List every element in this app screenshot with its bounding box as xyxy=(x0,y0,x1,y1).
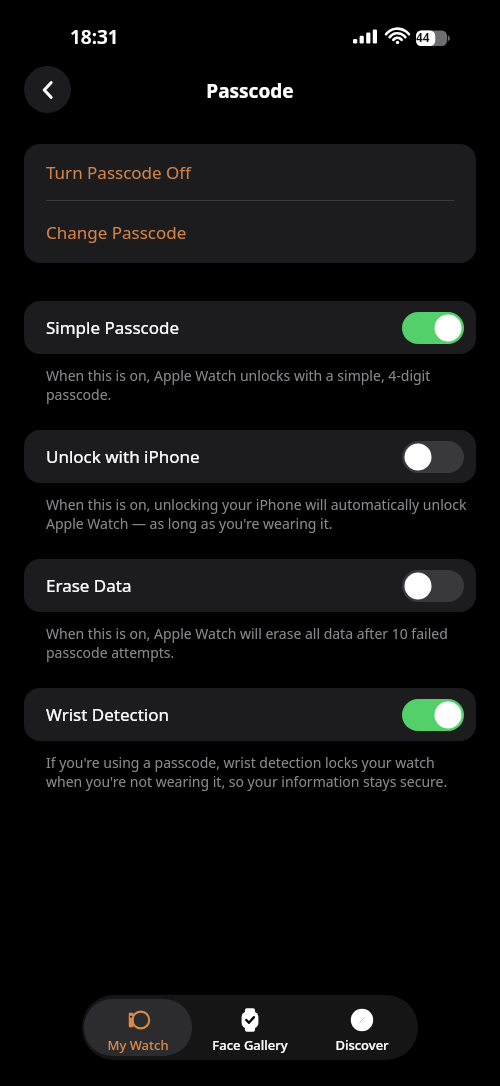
staticText: My Watch xyxy=(107,1036,169,1054)
staticText: Passcode xyxy=(0,78,500,104)
staticText: 44 xyxy=(416,29,430,45)
staticText: Unlock with iPhone xyxy=(46,445,402,468)
staticText: Discover xyxy=(335,1036,389,1054)
staticText: When this is on, Apple Watch will erase … xyxy=(46,624,470,662)
staticText: Erase Data xyxy=(46,574,402,597)
button[interactable]: Erase Data xyxy=(24,559,476,612)
staticText: Simple Passcode xyxy=(46,316,402,339)
staticText: Turn Passcode Off xyxy=(46,161,192,184)
button[interactable]: Unlock with iPhone xyxy=(24,430,476,483)
button[interactable]: Turn Passcode Off xyxy=(24,144,476,200)
staticText: 18:31 xyxy=(70,24,119,50)
staticText: When this is on, Apple Watch unlocks wit… xyxy=(46,366,470,404)
staticText: Wrist Detection xyxy=(46,703,402,726)
staticText: Face Gallery xyxy=(212,1036,288,1054)
button[interactable]: Discover xyxy=(308,999,416,1056)
button[interactable]: Change Passcode xyxy=(24,201,476,263)
staticText: If you're using a passcode, wrist detect… xyxy=(46,753,470,791)
button[interactable]: Simple Passcode xyxy=(24,301,476,354)
button[interactable]: Back xyxy=(24,66,71,113)
staticText: Change Passcode xyxy=(46,221,187,244)
button[interactable]: My Watch xyxy=(84,999,192,1056)
button[interactable]: Wrist Detection xyxy=(24,688,476,741)
staticText: When this is on, unlocking your iPhone w… xyxy=(46,495,470,533)
button[interactable]: Face Gallery xyxy=(196,999,304,1056)
